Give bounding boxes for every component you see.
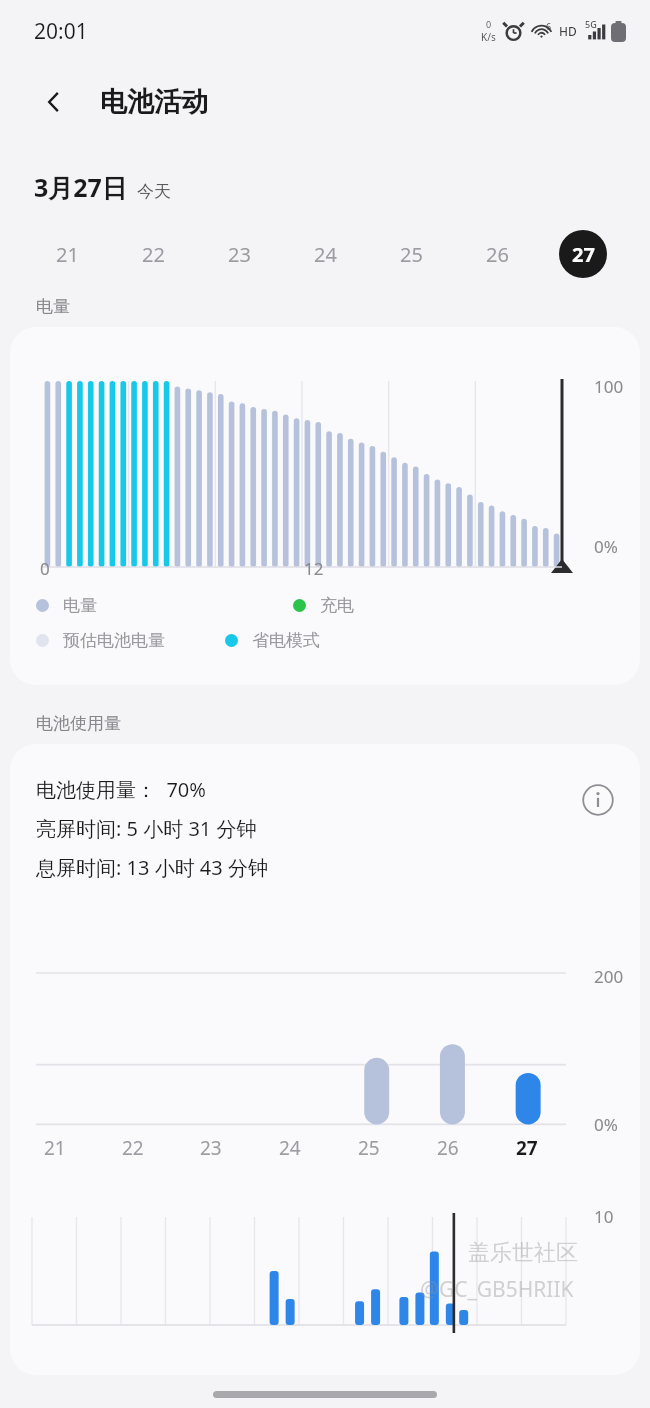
button[interactable]: 电池使用量： 70% xyxy=(10,744,640,1375)
staticText: 今天 xyxy=(137,181,171,202)
staticText: 100 xyxy=(594,375,624,398)
staticText: 息屏时间: 13 小时 43 分钟 xyxy=(36,854,268,881)
staticText: 6 xyxy=(546,20,552,32)
staticText: HD xyxy=(559,23,577,39)
staticText: 200 xyxy=(594,965,624,988)
staticText: 23 xyxy=(228,241,251,268)
staticText: 22 xyxy=(122,1135,144,1161)
staticText: 电池使用量 xyxy=(36,713,121,734)
staticText: 12 xyxy=(304,557,324,580)
staticText: 充电 xyxy=(320,595,354,616)
staticText: 22 xyxy=(142,241,165,268)
staticText: @GC_GB5HRIIK xyxy=(420,1275,574,1304)
staticText: 27 xyxy=(572,241,595,268)
staticText: 25 xyxy=(400,241,423,268)
staticText: 26 xyxy=(437,1135,459,1161)
button[interactable]: 100 xyxy=(10,327,640,685)
staticText: 24 xyxy=(279,1135,301,1161)
staticText: 25 xyxy=(358,1135,380,1161)
staticText: 0 xyxy=(486,18,492,30)
staticText: 0% xyxy=(594,1113,618,1136)
staticText: 省电模式 xyxy=(252,630,320,651)
staticText: 5G xyxy=(585,18,597,30)
staticText: 21 xyxy=(56,241,79,268)
staticText: 电池活动 xyxy=(100,85,208,119)
button[interactable]: 22 xyxy=(110,226,196,282)
button[interactable]: 24 xyxy=(282,226,368,282)
staticText: 3月27日 xyxy=(34,170,127,204)
staticText: 电池使用量： 70% xyxy=(36,776,206,803)
button[interactable]: 21 xyxy=(24,226,110,282)
staticText: 预估电池电量 xyxy=(63,630,165,651)
button[interactable]: 23 xyxy=(196,226,282,282)
button[interactable]: 27 xyxy=(540,226,626,282)
staticText: 0 xyxy=(40,557,50,580)
button[interactable]: 26 xyxy=(454,226,540,282)
staticText: 20:01 xyxy=(34,17,88,46)
button[interactable]: Back xyxy=(30,78,78,126)
staticText: K/s xyxy=(481,30,496,44)
button[interactable]: Info xyxy=(576,778,620,822)
staticText: 23 xyxy=(200,1135,222,1161)
staticText: 亮屏时间: 5 小时 31 分钟 xyxy=(36,815,257,842)
staticText: 电量 xyxy=(36,296,70,317)
staticText: 10 xyxy=(594,1205,614,1228)
staticText: 0% xyxy=(594,535,618,558)
staticText: 24 xyxy=(314,241,337,268)
staticText: 电量 xyxy=(63,595,97,616)
staticText: 21 xyxy=(44,1135,66,1161)
staticText: 盖乐世社区 xyxy=(468,1239,578,1267)
button[interactable]: 25 xyxy=(368,226,454,282)
staticText: 27 xyxy=(516,1135,538,1161)
staticText: 26 xyxy=(486,241,509,268)
